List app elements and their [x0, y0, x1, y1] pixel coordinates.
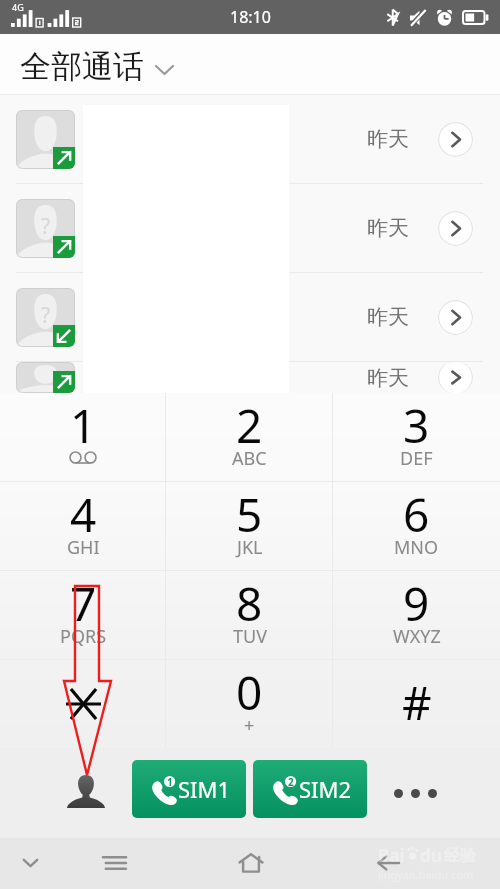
- staticText: 9: [403, 572, 430, 635]
- staticText: 4G: [12, 1, 24, 13]
- staticText: 2: [288, 775, 294, 789]
- staticText: ?: [41, 301, 51, 330]
- button[interactable]: 昨天: [0, 95, 500, 183]
- button[interactable]: Menu: [95, 844, 133, 882]
- staticText: Bai: [378, 844, 405, 867]
- button[interactable]: 昨天: [0, 362, 500, 393]
- button[interactable]: Call details: [438, 300, 473, 335]
- staticText: 3: [403, 394, 430, 457]
- staticText: MNO: [394, 535, 439, 560]
- button[interactable]: More options: [390, 776, 440, 810]
- staticText: PQRS: [60, 624, 107, 649]
- button[interactable]: [0, 660, 166, 748]
- button[interactable]: ?: [0, 273, 500, 361]
- button[interactable]: 5: [166, 482, 333, 570]
- button[interactable]: 1: [0, 393, 166, 481]
- staticText: DEF: [400, 446, 433, 471]
- button[interactable]: 2: [253, 760, 367, 818]
- staticText: jingyan.baidu.com: [378, 867, 474, 882]
- staticText: 昨天: [367, 365, 409, 391]
- staticText: 昨天: [367, 304, 409, 330]
- staticText: SIM1: [178, 774, 231, 804]
- staticText: 7: [70, 572, 97, 635]
- staticText: #: [402, 671, 432, 734]
- button[interactable]: 4: [0, 482, 166, 570]
- button[interactable]: ?: [0, 184, 500, 272]
- staticText: 4: [70, 483, 97, 546]
- button[interactable]: 全部通话: [20, 47, 174, 86]
- button[interactable]: 0: [166, 660, 333, 748]
- staticText: 1: [167, 775, 173, 789]
- button[interactable]: #: [333, 660, 500, 748]
- staticText: 0: [236, 661, 263, 724]
- button[interactable]: 8: [166, 571, 333, 659]
- staticText: GHI: [67, 535, 100, 560]
- button[interactable]: Call details: [438, 211, 473, 246]
- button[interactable]: 6: [333, 482, 500, 570]
- staticText: 全部通话: [20, 47, 144, 86]
- staticText: 1: [70, 394, 97, 457]
- button[interactable]: Home: [232, 844, 270, 882]
- button[interactable]: 9: [333, 571, 500, 659]
- staticText: JKL: [237, 535, 263, 560]
- staticText: WXYZ: [393, 624, 441, 649]
- button[interactable]: Call details: [438, 122, 473, 157]
- staticText: 经验: [444, 846, 476, 866]
- staticText: +: [244, 713, 255, 738]
- button[interactable]: 7: [0, 571, 166, 659]
- staticText: 18:10: [230, 6, 271, 28]
- staticText: ?: [41, 212, 51, 241]
- staticText: du: [420, 844, 442, 867]
- staticText: 昨天: [367, 215, 409, 241]
- button[interactable]: 3: [333, 393, 500, 481]
- staticText: 昨天: [367, 126, 409, 152]
- button[interactable]: 1: [132, 760, 246, 818]
- staticText: 5: [236, 483, 263, 546]
- staticText: 8: [236, 572, 263, 635]
- button[interactable]: Back: [369, 844, 407, 882]
- button[interactable]: Hide keyboard: [12, 844, 49, 882]
- staticText: TUV: [233, 624, 267, 649]
- button[interactable]: 2: [166, 393, 333, 481]
- staticText: 2: [236, 394, 263, 457]
- staticText: 6: [403, 483, 430, 546]
- button[interactable]: Contacts: [67, 775, 105, 808]
- staticText: SIM2: [299, 774, 352, 804]
- button[interactable]: Call details: [438, 362, 473, 393]
- staticText: ABC: [232, 446, 267, 471]
